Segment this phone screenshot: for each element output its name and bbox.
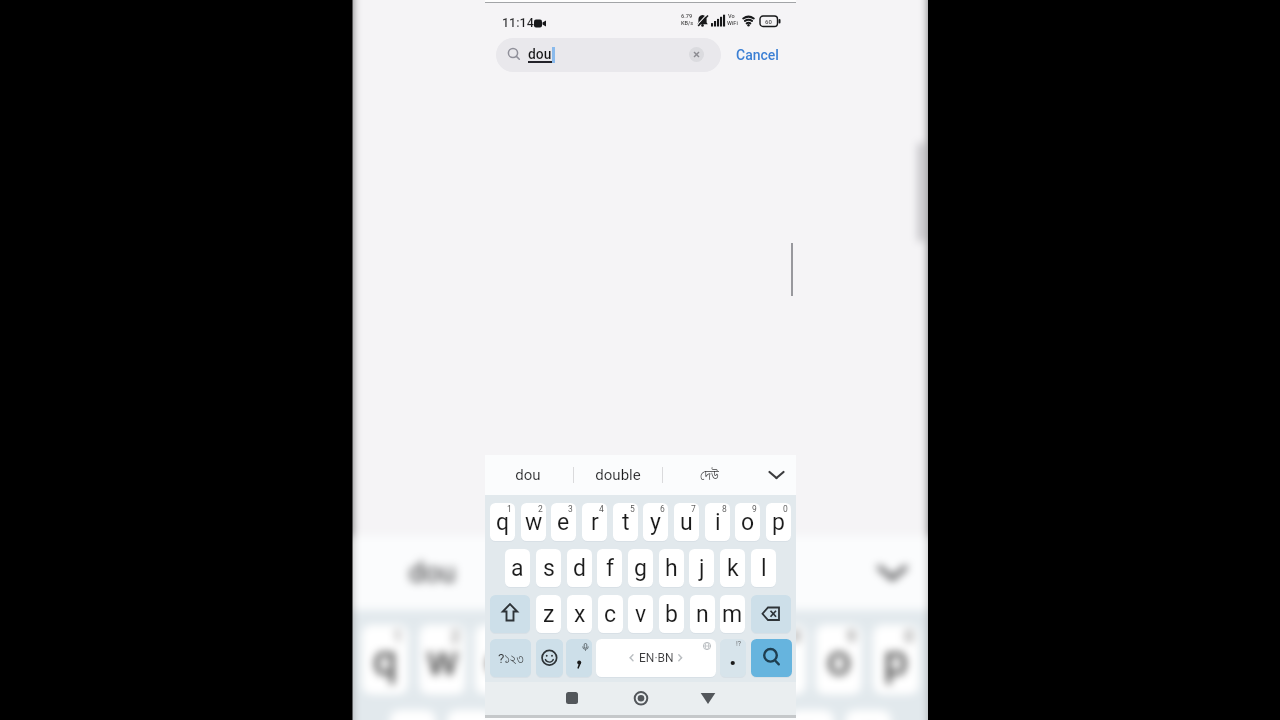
staticText: double <box>556 556 641 590</box>
staticText: 8 <box>722 504 727 514</box>
button[interactable]: g <box>628 549 653 587</box>
button[interactable]: m <box>720 595 745 633</box>
staticText: 1 <box>393 627 403 645</box>
button[interactable]: t <box>590 625 636 695</box>
staticText: দেউ <box>700 468 719 483</box>
staticText: g <box>634 555 647 582</box>
button[interactable]: c <box>598 595 623 633</box>
button[interactable]: q <box>490 503 515 541</box>
staticText: 1 <box>507 504 512 514</box>
button[interactable]: dou <box>488 460 568 490</box>
staticText: p <box>772 509 785 536</box>
button[interactable]: দেউ <box>669 460 749 490</box>
staticText: z <box>543 601 555 628</box>
button[interactable]: a <box>505 549 530 587</box>
button[interactable]: e <box>475 625 521 695</box>
staticText: 4 <box>599 504 604 514</box>
button[interactable]: o <box>815 625 862 695</box>
staticText: 0 <box>783 504 788 514</box>
button[interactable] <box>697 687 719 709</box>
button[interactable]: double <box>525 545 673 601</box>
button[interactable]: j <box>730 710 777 720</box>
button[interactable]: y <box>643 503 668 541</box>
button[interactable]: double <box>578 460 658 490</box>
button[interactable]: w <box>419 625 465 695</box>
staticText: 5 <box>621 627 630 645</box>
button[interactable] <box>496 38 721 72</box>
button[interactable]: u <box>674 503 699 541</box>
button[interactable] <box>566 639 592 677</box>
button[interactable]: p <box>873 625 919 695</box>
staticText: q <box>496 509 510 536</box>
staticText: EN·BN <box>639 651 674 665</box>
button[interactable]: b <box>659 595 684 633</box>
button[interactable]: u <box>702 625 749 695</box>
button[interactable]: y <box>645 625 691 695</box>
button[interactable]: l <box>845 710 891 720</box>
button[interactable]: i <box>760 625 806 695</box>
staticText: 11:14 <box>502 15 534 30</box>
button[interactable]: h <box>659 549 684 587</box>
button[interactable]: x <box>567 595 592 633</box>
button[interactable]: e <box>551 503 576 541</box>
staticText: Vo <box>728 13 735 20</box>
staticText: 3 <box>568 504 573 514</box>
staticText: r <box>591 509 599 536</box>
button[interactable]: r <box>532 625 578 695</box>
button[interactable]: EN·BN <box>596 639 716 677</box>
staticText: i <box>715 509 721 536</box>
button[interactable]: q <box>362 625 408 695</box>
button[interactable]: t <box>613 503 638 541</box>
button[interactable]: z <box>536 595 561 633</box>
button[interactable]: o <box>735 503 760 541</box>
button[interactable]: l <box>751 549 776 587</box>
button[interactable] <box>751 595 791 633</box>
button[interactable]: d <box>567 549 592 587</box>
staticText: dou <box>408 556 456 590</box>
button[interactable]: g <box>617 710 664 720</box>
button[interactable]: f <box>560 710 606 720</box>
button[interactable]: k <box>720 549 745 587</box>
button[interactable] <box>689 47 704 62</box>
staticText: s <box>543 555 555 582</box>
button[interactable] <box>869 549 915 595</box>
staticText: t <box>606 636 621 686</box>
staticText: double <box>595 466 641 484</box>
button[interactable]: s <box>536 549 561 587</box>
staticText: q <box>373 636 399 686</box>
staticText: b <box>665 601 678 628</box>
button[interactable]: দেউ <box>693 545 841 601</box>
staticText: i <box>778 636 790 686</box>
button[interactable]: Cancel <box>730 42 784 68</box>
button[interactable]: i <box>705 503 730 541</box>
button[interactable]: s <box>447 710 493 720</box>
staticText: m <box>722 601 743 628</box>
button[interactable]: p <box>766 503 791 541</box>
button[interactable]: v <box>628 595 653 633</box>
button[interactable]: r <box>582 503 607 541</box>
button[interactable] <box>536 639 563 677</box>
button[interactable] <box>751 639 792 677</box>
button[interactable]: dou <box>358 545 506 601</box>
button[interactable]: d <box>504 710 551 720</box>
button[interactable]: a <box>390 710 436 720</box>
staticText: দেউ <box>751 560 786 588</box>
button[interactable]: !? <box>720 639 746 677</box>
button[interactable]: k <box>788 710 834 720</box>
button[interactable] <box>561 687 583 709</box>
staticText: w <box>427 636 460 686</box>
button[interactable]: n <box>690 595 715 633</box>
staticText: p <box>884 636 908 686</box>
button[interactable]: f <box>597 549 622 587</box>
button[interactable]: h <box>675 710 721 720</box>
staticText: 6 <box>677 627 686 645</box>
staticText: c <box>604 601 617 628</box>
staticText: !? <box>736 640 742 648</box>
button[interactable]: w <box>521 503 546 541</box>
button[interactable]: j <box>689 549 714 587</box>
staticText: y <box>650 509 661 536</box>
button[interactable] <box>490 595 530 633</box>
button[interactable] <box>630 687 652 709</box>
button[interactable] <box>764 462 789 487</box>
button[interactable]: ?১২৩ <box>490 639 531 677</box>
